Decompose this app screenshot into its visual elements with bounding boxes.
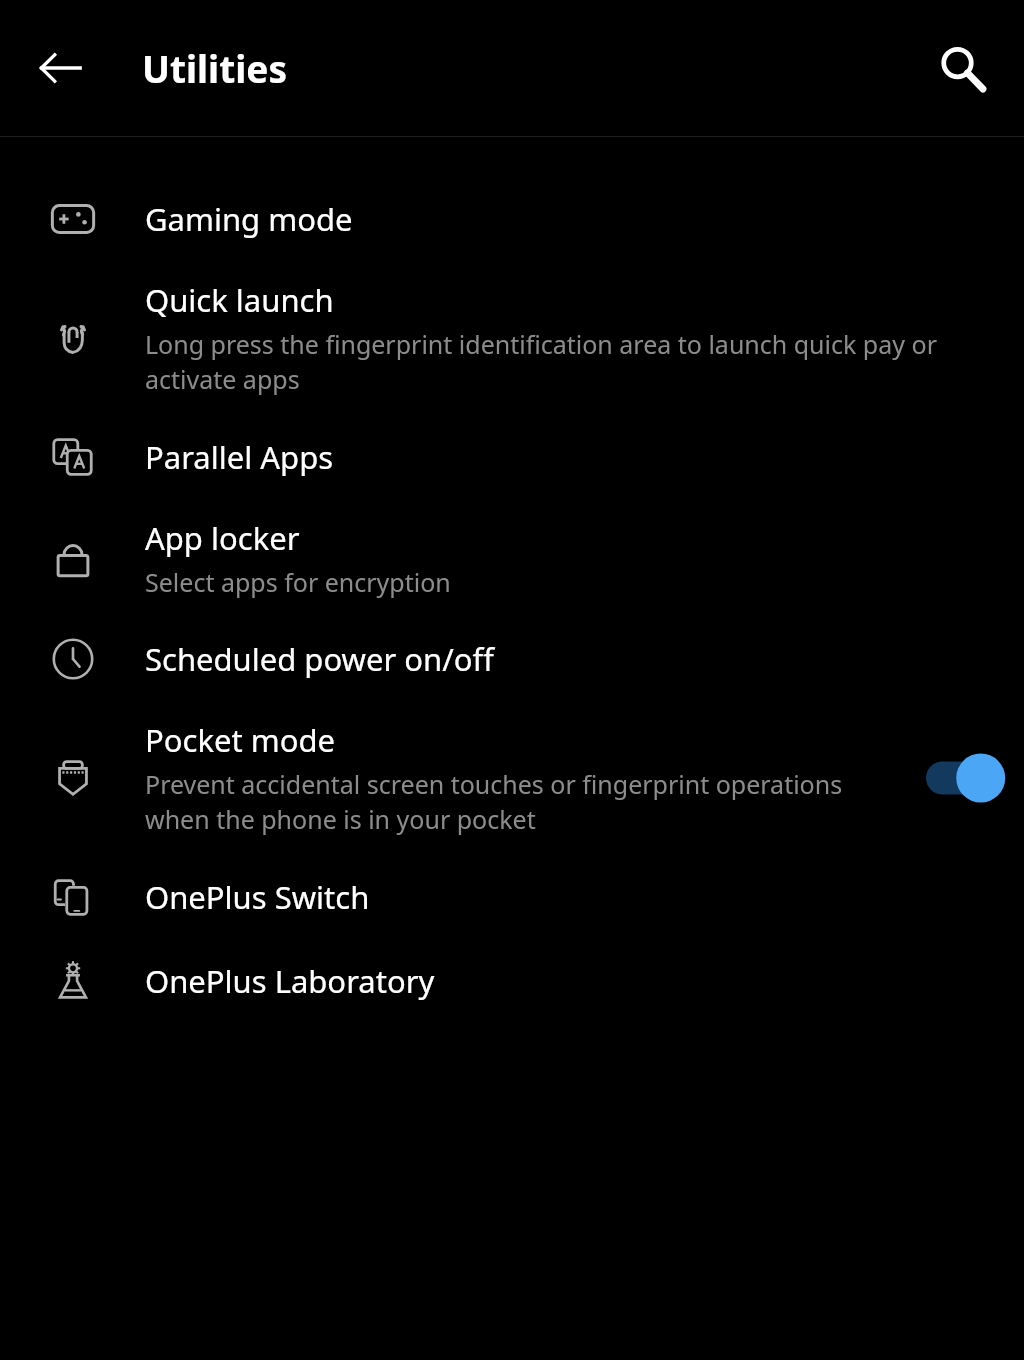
staticText: Quick launch <box>145 279 334 321</box>
staticText: Parallel Apps <box>145 436 334 478</box>
button[interactable]: Search <box>924 30 1000 106</box>
staticText: Select apps for encryption <box>145 565 451 599</box>
staticText: Long press the fingerprint identificatio… <box>145 327 984 397</box>
staticText: Pocket mode <box>145 719 335 761</box>
staticText: Prevent accidental screen touches or fin… <box>145 767 898 837</box>
button[interactable]: Back <box>26 34 94 102</box>
button[interactable]: Quick launch <box>0 261 1024 415</box>
staticText: Scheduled power on/off <box>145 638 494 680</box>
button[interactable]: Parallel Apps <box>0 415 1024 499</box>
staticText: OnePlus Switch <box>145 876 370 918</box>
staticText: App locker <box>145 517 300 559</box>
staticText: Gaming mode <box>145 198 353 240</box>
button[interactable]: OnePlus Laboratory <box>0 939 1024 1023</box>
button[interactable]: Pocket mode toggle <box>906 738 1024 818</box>
button[interactable]: App locker <box>0 499 1024 617</box>
staticText: OnePlus Laboratory <box>145 960 435 1002</box>
button[interactable]: Pocket mode <box>0 701 1024 855</box>
button[interactable]: OnePlus Switch <box>0 855 1024 939</box>
button[interactable]: Gaming mode <box>0 177 1024 261</box>
button[interactable]: Scheduled power on/off <box>0 617 1024 701</box>
staticText: Utilities <box>142 43 287 93</box>
